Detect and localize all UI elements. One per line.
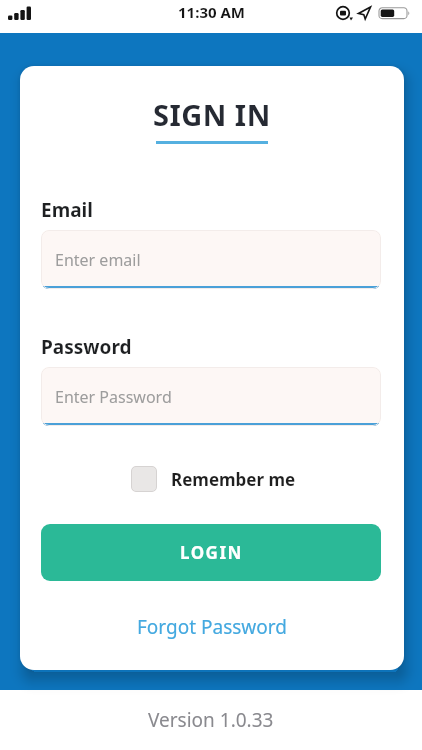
button[interactable]: LOGIN <box>41 524 381 581</box>
staticText: Email <box>41 197 93 223</box>
staticText: LOGIN <box>180 541 243 564</box>
staticText: 11:30 AM <box>178 2 245 22</box>
staticText: Enter Password <box>55 386 172 408</box>
button[interactable]: Enter email <box>41 230 381 289</box>
staticText: Enter email <box>55 249 141 271</box>
button[interactable]: Remember me <box>131 466 296 492</box>
staticText: Password <box>41 334 132 360</box>
button[interactable]: Enter Password <box>41 367 381 426</box>
button[interactable]: Forgot Password <box>137 614 287 640</box>
staticText: Version 1.0.33 <box>148 707 274 733</box>
staticText: Remember me <box>171 468 296 491</box>
staticText: SIGN IN <box>153 95 271 134</box>
